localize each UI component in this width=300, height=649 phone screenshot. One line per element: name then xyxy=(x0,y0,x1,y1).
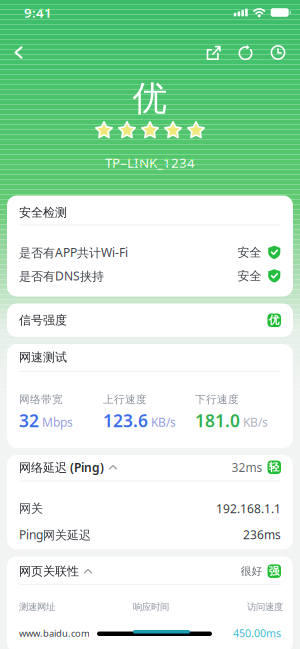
staticText: 优 xyxy=(269,314,280,327)
button[interactable]: www.baidu.com xyxy=(7,613,293,640)
staticText: 192.168.1.1 xyxy=(216,501,281,516)
staticText: 信号强度 xyxy=(19,313,67,328)
staticText: 32 xyxy=(19,409,39,432)
button[interactable]: 网络延迟 (Ping) xyxy=(7,455,293,475)
staticText: 32ms xyxy=(231,459,262,475)
staticText: 9:41 xyxy=(24,4,52,21)
staticText: 123.6 xyxy=(103,409,148,432)
staticText: 网络延迟 (Ping) xyxy=(19,459,104,475)
staticText: 响应时间 xyxy=(133,601,169,613)
staticText: 236ms xyxy=(243,527,281,542)
staticText: 网关 xyxy=(19,501,43,516)
staticText: 网络带宽 xyxy=(19,393,63,406)
staticText: KB/s xyxy=(243,414,268,430)
staticText: 安全 xyxy=(237,269,261,283)
staticText: 测速网址 xyxy=(19,601,55,613)
button[interactable]: 网页关联性 xyxy=(7,556,293,578)
staticText: 很好 xyxy=(240,565,262,578)
staticText: 强 xyxy=(269,565,280,578)
staticText: Mbps xyxy=(42,414,73,430)
staticText: 优 xyxy=(132,77,167,120)
staticText: 450.00ms xyxy=(233,626,281,640)
staticText: TP–LINK_1234 xyxy=(105,154,195,171)
staticText: 安全检测 xyxy=(19,205,67,220)
staticText: 网速测试 xyxy=(19,350,67,364)
staticText: Ping网关延迟 xyxy=(19,526,91,542)
staticText: 安全 xyxy=(237,245,261,260)
button[interactable] xyxy=(204,44,221,61)
button[interactable] xyxy=(254,44,300,61)
staticText: 上行速度 xyxy=(103,393,147,406)
button[interactable] xyxy=(221,44,254,61)
staticText: 访问速度 xyxy=(247,601,283,613)
staticText: 是否有DNS挟持 xyxy=(19,268,104,284)
staticText: 轻 xyxy=(269,461,280,474)
staticText: 网页关联性 xyxy=(19,564,79,578)
button[interactable] xyxy=(0,46,23,59)
staticText: KB/s xyxy=(151,414,176,430)
staticText: www.baidu.com xyxy=(19,627,90,639)
staticText: 下行速度 xyxy=(195,393,239,406)
staticText: 181.0 xyxy=(195,409,240,432)
staticText: 是否有APP共计Wi-Fi xyxy=(19,244,128,260)
